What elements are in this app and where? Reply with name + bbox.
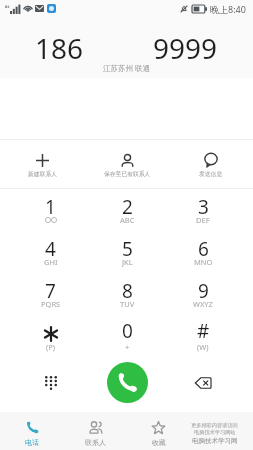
button[interactable]: 3 <box>165 190 241 232</box>
staticText: 电脑技术学习网 <box>192 437 238 445</box>
staticText: WXYZ <box>193 299 213 309</box>
staticText: 更多精彩内容请访问 <box>191 422 238 429</box>
button[interactable]: 联系人 <box>64 412 127 450</box>
button[interactable] <box>190 412 253 450</box>
staticText: 0 <box>122 318 133 344</box>
button[interactable]: 新建联系人 <box>0 140 85 188</box>
button[interactable]: Delete <box>165 360 241 405</box>
button[interactable]: 9 <box>165 274 241 316</box>
button[interactable]: 0 <box>89 314 165 356</box>
staticText: 7 <box>45 278 56 304</box>
button[interactable]: Call <box>107 362 148 403</box>
button[interactable]: 电话 <box>0 412 64 450</box>
button[interactable]: 8 <box>89 274 165 316</box>
staticText: 3 <box>198 194 209 220</box>
staticText: 8 <box>122 278 133 304</box>
staticText: 9 <box>198 278 209 304</box>
staticText: + <box>125 342 130 352</box>
staticText: DEF <box>196 215 210 225</box>
staticText: 9999 <box>153 29 218 67</box>
staticText: # <box>197 318 210 344</box>
button[interactable]: 2 <box>89 190 165 232</box>
button[interactable]: 保存至已有联系人 <box>85 140 169 188</box>
staticText: TUV <box>120 299 135 309</box>
button[interactable]: Keypad <box>12 360 89 405</box>
staticText: (W) <box>197 342 209 352</box>
staticText: 5 <box>122 236 133 262</box>
staticText: 江苏苏州 联通 <box>103 63 150 73</box>
staticText: PQRS <box>41 299 61 309</box>
staticText: 发送信息 <box>199 170 223 177</box>
staticText: ABC <box>120 215 135 225</box>
button[interactable]: 5 <box>89 232 165 274</box>
staticText: 2 <box>122 194 133 220</box>
staticText: 1 <box>45 194 56 220</box>
button[interactable]: 1 <box>12 190 89 232</box>
staticText: 保存至已有联系人 <box>104 170 151 177</box>
staticText: 186 <box>35 29 84 67</box>
staticText: GHI <box>44 257 58 267</box>
staticText: MNO <box>194 257 213 267</box>
staticText: 收藏 <box>152 438 166 447</box>
button[interactable]: 7 <box>12 274 89 316</box>
button[interactable]: (P) <box>12 314 89 356</box>
button[interactable]: 4 <box>12 232 89 274</box>
staticText: 新建联系人 <box>28 170 57 177</box>
staticText: 联系人 <box>85 438 106 447</box>
button[interactable]: 6 <box>165 232 241 274</box>
staticText: 6 <box>198 236 209 262</box>
staticText: 电脑技术学习网站 <box>194 429 236 436</box>
staticText: 晚上8:40 <box>210 3 246 15</box>
staticText: JKL <box>122 257 133 267</box>
button[interactable]: 收藏 <box>127 412 190 450</box>
button[interactable]: 发送信息 <box>169 140 253 188</box>
button[interactable]: # <box>165 314 241 356</box>
staticText: 4 <box>45 236 56 262</box>
staticText: (P) <box>46 342 56 352</box>
staticText: 电话 <box>25 438 39 447</box>
